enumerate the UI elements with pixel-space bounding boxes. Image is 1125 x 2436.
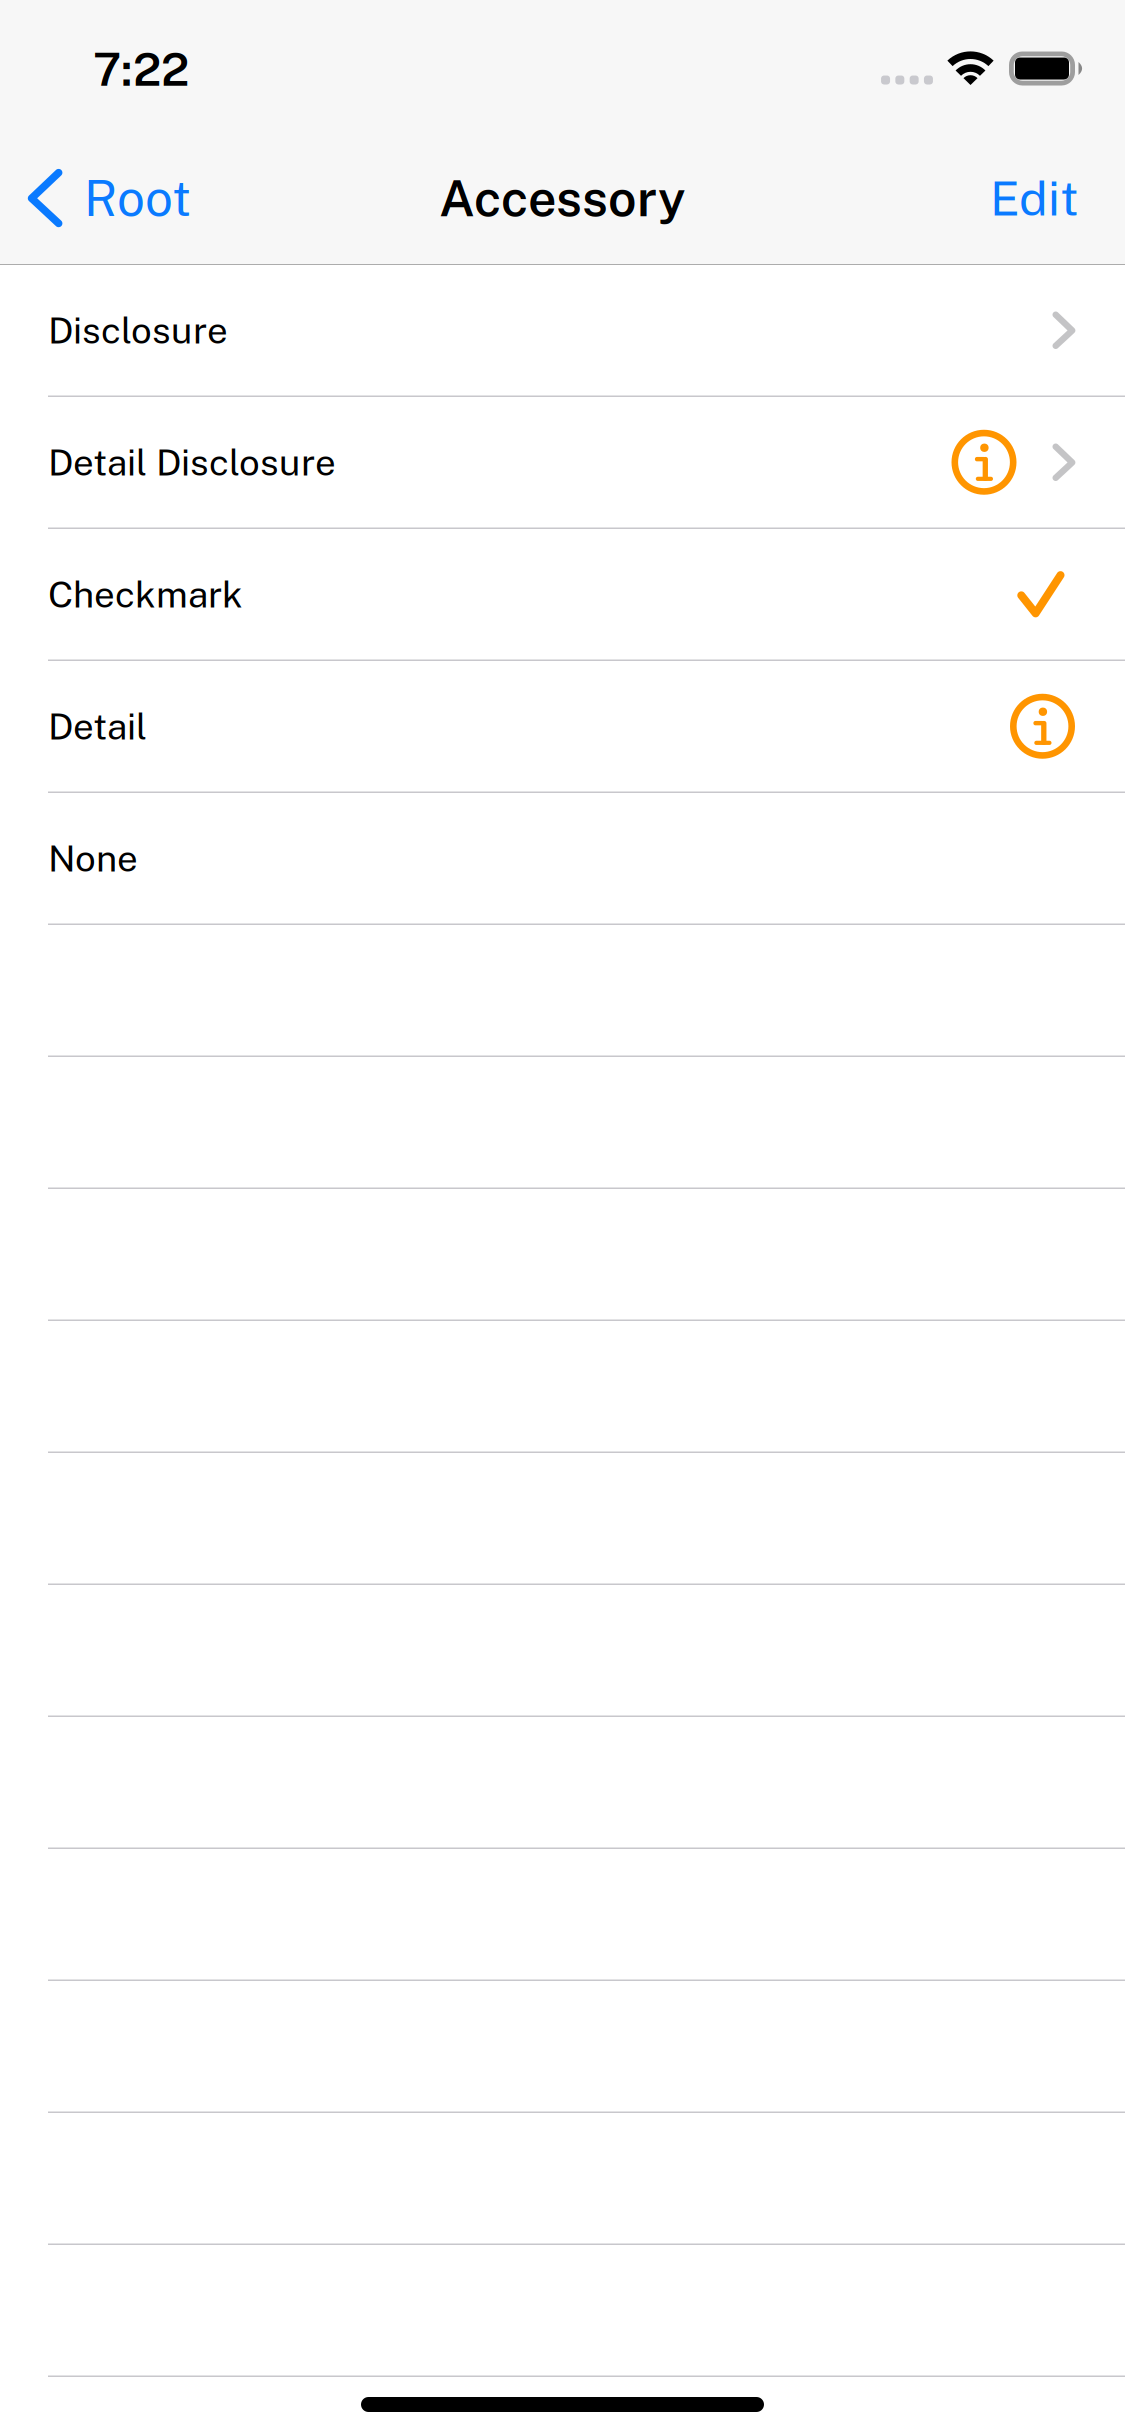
staticText: Disclosure (48, 309, 228, 352)
staticText: Checkmark (48, 573, 243, 616)
button[interactable]: Detail (0, 661, 1125, 793)
staticText: Accessory (439, 169, 686, 227)
button[interactable]: None (0, 793, 1125, 925)
button[interactable]: More Info (1010, 683, 1075, 769)
staticText: None (48, 837, 138, 880)
button[interactable]: Checkmark (0, 529, 1125, 661)
staticText: Detail Disclosure (48, 441, 336, 484)
staticText: 7:22 (93, 42, 189, 96)
button[interactable]: Detail Disclosure (0, 397, 1125, 529)
button[interactable]: More Info (951, 419, 1016, 505)
button[interactable]: Back to Root (0, 132, 207, 264)
staticText: Root (84, 169, 191, 227)
button[interactable]: Disclosure (0, 265, 1125, 397)
button[interactable]: Edit (972, 132, 1097, 264)
staticText: Detail (48, 705, 147, 748)
staticText: Edit (990, 170, 1079, 226)
